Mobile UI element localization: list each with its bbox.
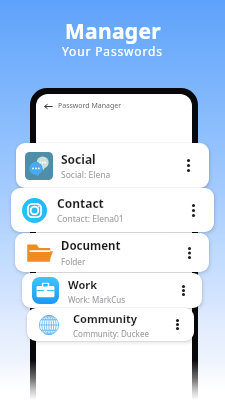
button[interactable]: Community [27, 308, 194, 341]
staticText: Social: Elena [61, 169, 111, 181]
staticText: Work: MarkCus [68, 294, 126, 305]
button[interactable]: Document [15, 233, 209, 272]
button[interactable]: Back [43, 101, 54, 112]
staticText: Work [68, 277, 98, 292]
button[interactable]: Social [16, 143, 209, 188]
staticText: Folder [61, 256, 86, 267]
staticText: Manager [65, 17, 161, 46]
button[interactable]: More options [189, 204, 197, 217]
staticText: Contact: Elena01 [57, 213, 124, 225]
button[interactable]: Contact [11, 188, 214, 232]
button[interactable]: More options [185, 247, 193, 259]
staticText: Contact [57, 195, 104, 211]
staticText: Your Passwords [62, 43, 163, 59]
staticText: Social [61, 151, 96, 167]
staticText: Community: Duckee [73, 328, 149, 339]
button[interactable]: Back [36, 94, 192, 118]
staticText: Document [61, 238, 121, 254]
button[interactable]: More options [184, 159, 192, 172]
button[interactable]: Work [22, 273, 202, 308]
button[interactable]: More options [179, 285, 187, 296]
button[interactable]: More options [173, 319, 181, 330]
staticText: Password Manager [58, 101, 122, 111]
staticText: Community [73, 311, 138, 326]
